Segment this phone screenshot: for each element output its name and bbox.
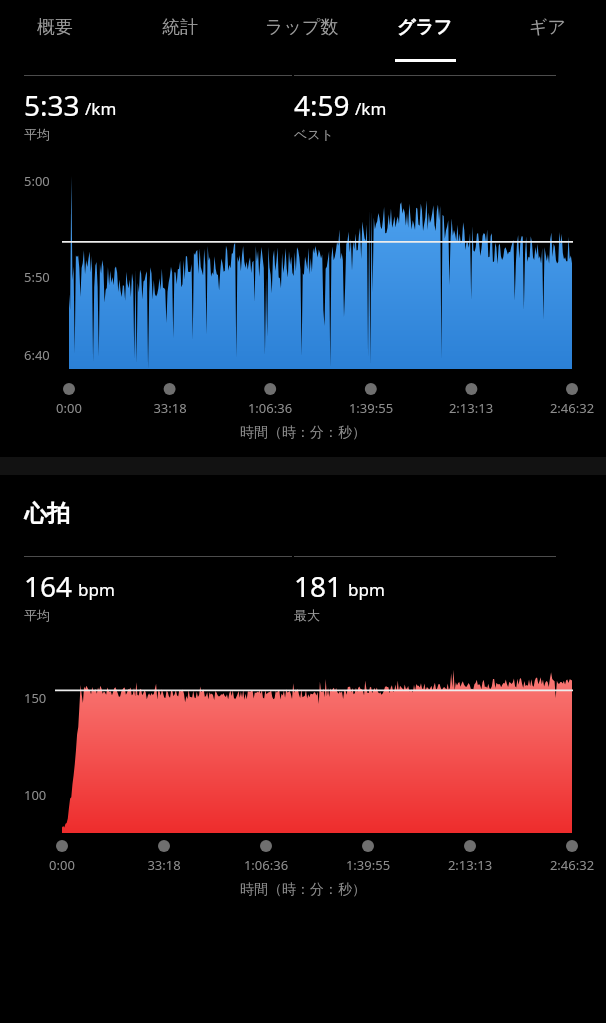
staticText: 概要 bbox=[37, 16, 73, 39]
staticText: 時間（時：分：秒） bbox=[0, 881, 606, 899]
staticText: ギア bbox=[529, 16, 566, 39]
staticText: /km bbox=[85, 97, 117, 120]
staticText: 0:00 bbox=[12, 856, 112, 874]
staticText: ベスト bbox=[294, 126, 334, 142]
staticText: 1:39:55 bbox=[318, 856, 418, 874]
staticText: 平均 bbox=[24, 126, 50, 142]
staticText: 2:13:13 bbox=[420, 856, 520, 874]
staticText: 0:00 bbox=[19, 399, 119, 417]
staticText: 統計 bbox=[162, 16, 198, 39]
staticText: 5:50 bbox=[24, 268, 50, 286]
button[interactable]: ラップ数 bbox=[247, 0, 357, 66]
button[interactable]: 概要 bbox=[0, 0, 110, 66]
staticText: 1:06:36 bbox=[216, 856, 316, 874]
staticText: 150 bbox=[24, 689, 47, 707]
button[interactable]: グラフ bbox=[370, 0, 480, 66]
button[interactable]: ギア bbox=[492, 0, 602, 66]
staticText: 6:40 bbox=[24, 346, 50, 364]
staticText: 2:46:32 bbox=[522, 399, 606, 417]
staticText: 平均 bbox=[24, 607, 50, 623]
staticText: グラフ bbox=[397, 16, 453, 39]
staticText: /km bbox=[355, 97, 387, 120]
staticText: 2:46:32 bbox=[522, 856, 606, 874]
staticText: ラップ数 bbox=[265, 16, 339, 39]
staticText: bpm bbox=[78, 578, 115, 601]
staticText: 1:39:55 bbox=[321, 399, 421, 417]
staticText: 時間（時：分：秒） bbox=[0, 424, 606, 442]
staticText: 164 bbox=[24, 567, 73, 605]
button[interactable]: 統計 bbox=[125, 0, 235, 66]
staticText: 最大 bbox=[294, 607, 320, 623]
staticText: 4:59 bbox=[294, 86, 350, 124]
staticText: 5:00 bbox=[24, 172, 50, 190]
staticText: 心拍 bbox=[24, 499, 70, 528]
staticText: 1:06:36 bbox=[220, 399, 320, 417]
staticText: 33:18 bbox=[120, 399, 220, 417]
staticText: 5:33 bbox=[24, 86, 80, 124]
staticText: 100 bbox=[24, 786, 47, 804]
staticText: 2:13:13 bbox=[421, 399, 521, 417]
staticText: bpm bbox=[348, 578, 385, 601]
staticText: 33:18 bbox=[114, 856, 214, 874]
staticText: 181 bbox=[294, 567, 343, 605]
